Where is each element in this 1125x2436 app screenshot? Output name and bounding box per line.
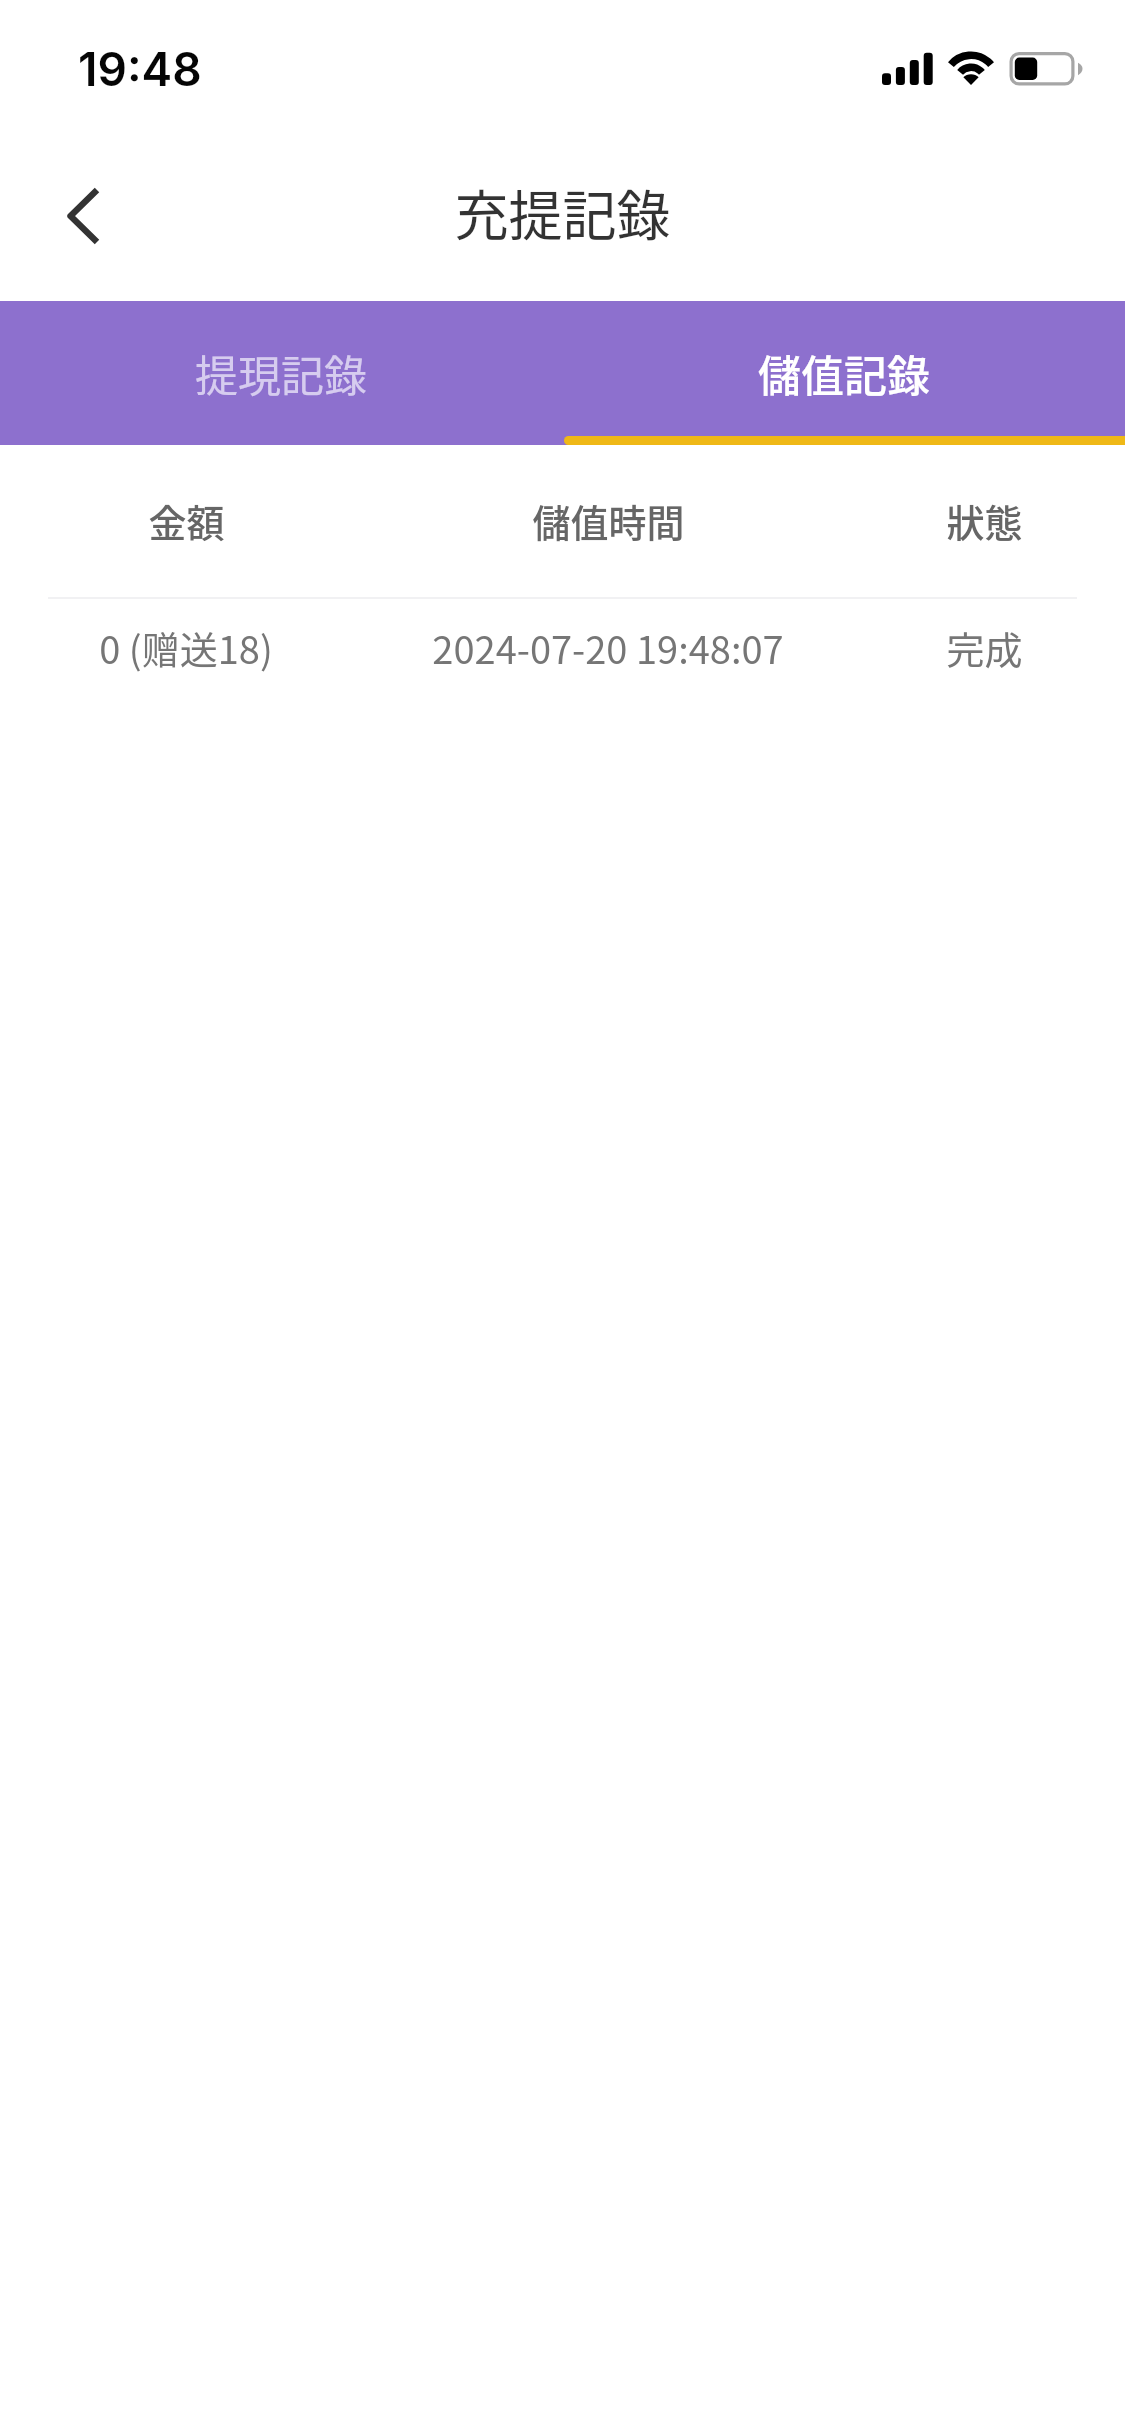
staticText: 完成 <box>946 620 1023 675</box>
button[interactable]: 提現記錄 <box>0 301 562 445</box>
staticText: 儲值時間 <box>532 493 685 548</box>
button[interactable]: 0 (赠送18) <box>0 599 1125 699</box>
staticText: 充提記錄 <box>0 173 1125 251</box>
staticText: 19:48 <box>78 41 202 97</box>
button[interactable]: 儲值記錄 <box>562 301 1125 445</box>
staticText: 提現記錄 <box>195 342 367 404</box>
staticText: 儲值記錄 <box>758 342 930 404</box>
staticText: 0 (赠送18) <box>99 620 273 675</box>
staticText: 金額 <box>148 493 225 548</box>
staticText: 2024-07-20 19:48:07 <box>432 620 784 675</box>
button[interactable]: Back <box>22 160 142 272</box>
staticText: 狀態 <box>946 493 1023 548</box>
